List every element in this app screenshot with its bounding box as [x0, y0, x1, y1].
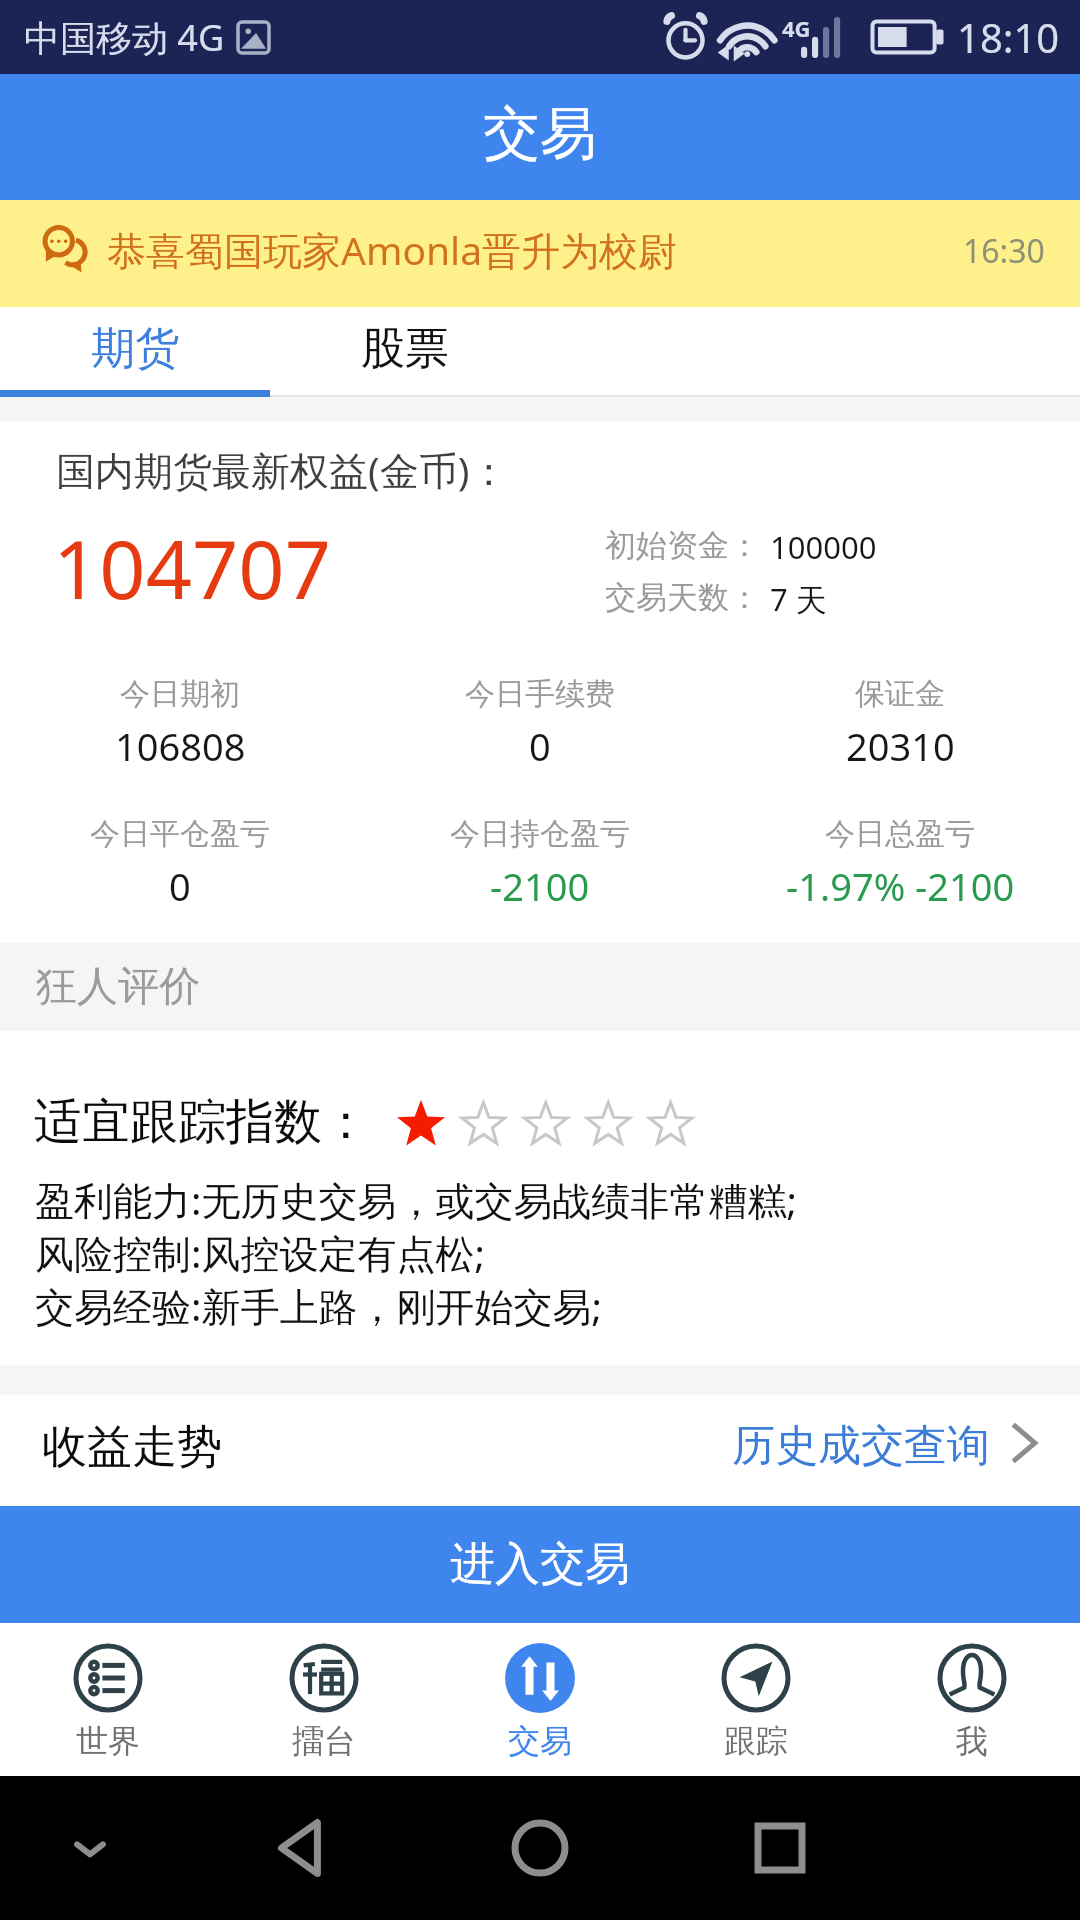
- button[interactable]: 股票: [270, 307, 540, 397]
- button[interactable]: Hide keyboard: [0, 1776, 180, 1920]
- button[interactable]: 我: [864, 1623, 1080, 1776]
- staticText: 16:30: [963, 229, 1045, 273]
- staticText: 进入交易: [450, 1536, 630, 1593]
- staticText: 100000: [770, 526, 877, 568]
- button[interactable]: Recents: [660, 1776, 900, 1920]
- staticText: 0: [529, 720, 551, 772]
- button[interactable]: Back: [180, 1776, 420, 1920]
- staticText: 今日平仓盈亏: [90, 815, 270, 853]
- staticText: 保证金: [855, 675, 945, 713]
- staticText: 今日总盈亏: [825, 815, 975, 853]
- staticText: 历史成交查询: [732, 1419, 990, 1473]
- staticText: 世界: [76, 1721, 140, 1761]
- button[interactable]: 恭喜蜀国玩家Amonla晋升为校尉: [0, 200, 1080, 307]
- staticText: 擂台: [292, 1721, 356, 1761]
- staticText: 7 天: [770, 578, 827, 620]
- staticText: 106808: [115, 720, 246, 772]
- staticText: 今日期初: [120, 675, 240, 713]
- button[interactable]: 交易: [432, 1623, 648, 1776]
- staticText: 交易天数：: [605, 578, 760, 617]
- button[interactable]: 进入交易: [0, 1506, 1080, 1623]
- staticText: 今日手续费: [465, 675, 615, 713]
- staticText: 交易: [508, 1721, 572, 1761]
- button[interactable]: 世界: [0, 1623, 216, 1776]
- staticText: 国内期货最新权益(金币)：: [56, 443, 509, 496]
- staticText: 狂人评价: [36, 961, 200, 1013]
- staticText: 20310: [846, 720, 955, 772]
- button[interactable]: 擂台: [216, 1623, 432, 1776]
- staticText: 适宜跟踪指数：: [34, 1092, 370, 1152]
- staticText: 18:10: [957, 10, 1060, 64]
- staticText: 4G: [782, 13, 811, 43]
- staticText: -2100: [490, 860, 590, 912]
- staticText: -1.97% -2100: [786, 860, 1015, 912]
- staticText: 期货: [91, 321, 179, 376]
- staticText: 今日持仓盈亏: [450, 815, 630, 853]
- staticText: 恭喜蜀国玩家Amonla晋升为校尉: [107, 223, 678, 276]
- staticText: 盈利能力:无历史交易，或交易战绩非常糟糕; 风险控制:风控设定有点松; 交易经验…: [35, 1173, 797, 1333]
- staticText: 我: [956, 1721, 988, 1761]
- staticText: 收益走势: [42, 1419, 222, 1476]
- staticText: 104707: [53, 512, 331, 622]
- staticText: 初始资金：: [605, 526, 760, 565]
- button[interactable]: 收益走势: [0, 1395, 1080, 1506]
- staticText: 交易: [483, 98, 597, 170]
- staticText: 0: [169, 860, 191, 912]
- button[interactable]: Home: [420, 1776, 660, 1920]
- staticText: 中国移动 4G: [24, 13, 225, 62]
- staticText: 跟踪: [724, 1721, 788, 1761]
- button[interactable]: 跟踪: [648, 1623, 864, 1776]
- staticText: 股票: [361, 321, 449, 376]
- button[interactable]: 期货: [0, 307, 270, 397]
